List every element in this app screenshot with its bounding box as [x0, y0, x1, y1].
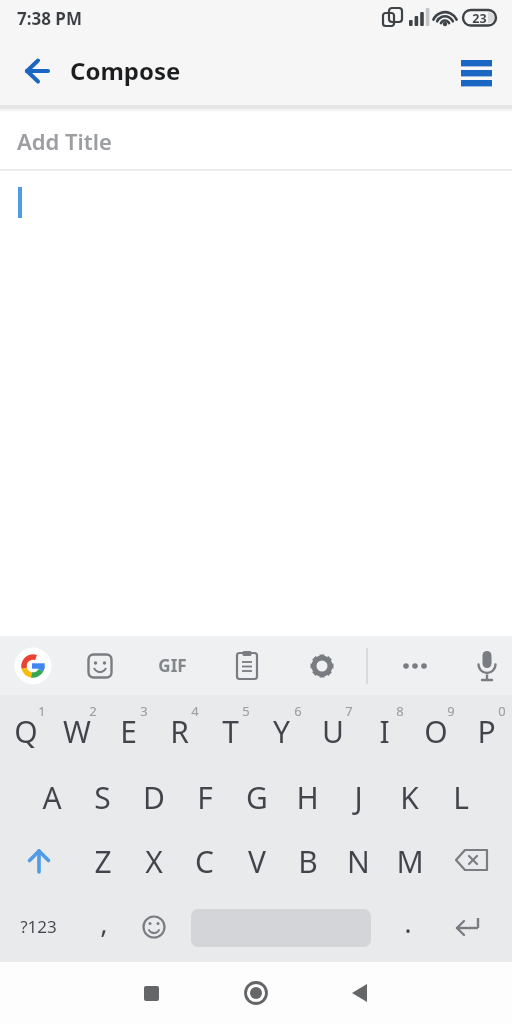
button[interactable] [223, 642, 271, 690]
staticText: 5 [242, 702, 250, 720]
button[interactable]: A [26, 767, 77, 827]
button[interactable] [76, 642, 124, 690]
button[interactable]: R [154, 701, 205, 761]
staticText: T [222, 711, 239, 752]
button[interactable]: H [282, 767, 333, 827]
staticText: M [396, 841, 424, 882]
staticText: 1 [38, 702, 46, 720]
staticText: 0 [498, 702, 506, 720]
staticText: 7 [345, 702, 353, 720]
staticText: H [296, 777, 319, 818]
button[interactable]: X [128, 831, 179, 891]
button[interactable]: M [384, 831, 435, 891]
staticText: 2 [89, 702, 97, 720]
staticText: V [248, 841, 266, 882]
staticText: Q [14, 711, 38, 752]
staticText: P [477, 711, 496, 752]
staticText: D [143, 777, 165, 818]
button[interactable] [128, 898, 180, 958]
button[interactable]: U [307, 701, 358, 761]
button[interactable] [232, 969, 280, 1017]
button[interactable]: Z [77, 831, 128, 891]
button[interactable] [391, 642, 439, 690]
button[interactable] [13, 831, 65, 891]
staticText: U [322, 711, 344, 752]
staticText: N [347, 841, 370, 882]
button[interactable]: Q [0, 701, 51, 761]
button[interactable]: T [205, 701, 256, 761]
button[interactable]: G [231, 767, 282, 827]
staticText: 8 [396, 702, 404, 720]
staticText: . [404, 903, 412, 941]
staticText: B [298, 841, 318, 882]
button[interactable]: Y [256, 701, 307, 761]
button[interactable] [9, 642, 57, 690]
button[interactable]: N [333, 831, 384, 891]
button[interactable]: I [359, 701, 410, 761]
button[interactable] [0, 171, 512, 636]
staticText: ?123 [20, 915, 57, 938]
staticText: E [120, 711, 137, 752]
button[interactable]: P [461, 701, 512, 761]
staticText: O [424, 711, 448, 752]
staticText: Y [273, 711, 290, 752]
button[interactable]: S [77, 767, 128, 827]
button[interactable]: F [179, 767, 230, 827]
staticText: GIF [158, 654, 187, 677]
staticText: 9 [447, 702, 455, 720]
staticText: G [246, 777, 268, 818]
staticText: K [400, 777, 419, 818]
staticText: Add Title [17, 126, 112, 156]
staticText: J [354, 777, 363, 818]
staticText: A [42, 777, 62, 818]
staticText: 7:38 PM [17, 7, 82, 30]
staticText: W [63, 711, 91, 752]
button[interactable]: C [179, 831, 230, 891]
button[interactable] [453, 47, 501, 95]
button[interactable] [298, 642, 346, 690]
staticText: Compose [70, 54, 181, 87]
button[interactable] [463, 642, 511, 690]
staticText: I [379, 711, 390, 752]
button[interactable]: B [282, 831, 333, 891]
button[interactable]: ?123 [8, 896, 68, 956]
button[interactable]: W [51, 701, 102, 761]
button[interactable]: K [384, 767, 435, 827]
staticText: 3 [140, 702, 148, 720]
button[interactable]: J [333, 767, 384, 827]
button[interactable]: , [88, 892, 120, 952]
button[interactable] [442, 898, 498, 958]
staticText: F [197, 777, 213, 818]
staticText: S [94, 777, 111, 818]
button[interactable]: . [392, 892, 424, 952]
staticText: R [170, 711, 189, 752]
staticText: 6 [294, 702, 302, 720]
button[interactable]: L [435, 767, 486, 827]
button[interactable] [444, 831, 498, 891]
staticText: L [453, 777, 469, 818]
button[interactable] [127, 969, 175, 1017]
staticText: C [195, 841, 214, 882]
button[interactable]: D [128, 767, 179, 827]
button[interactable]: V [231, 831, 282, 891]
staticText: X [145, 841, 163, 882]
button[interactable] [148, 642, 196, 690]
staticText: , [100, 903, 108, 941]
button[interactable]: E [103, 701, 154, 761]
staticText: 4 [191, 702, 199, 720]
button[interactable] [13, 47, 61, 95]
button[interactable]: O [410, 701, 461, 761]
staticText: Z [94, 841, 112, 882]
button[interactable] [336, 969, 384, 1017]
button[interactable]: Add Title [0, 112, 512, 169]
staticText: 23 [472, 10, 487, 27]
